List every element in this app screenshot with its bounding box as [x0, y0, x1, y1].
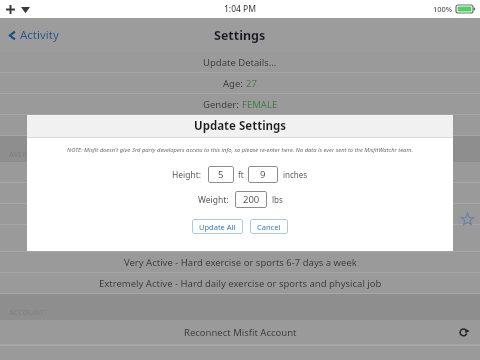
staticText: Cancel [257, 222, 281, 232]
staticText: NOTE: Misfit doesn't give 3rd party deve… [49, 146, 431, 154]
button[interactable]: Cancel [250, 219, 288, 234]
button[interactable] [0, 183, 480, 203]
button[interactable]: 5 [208, 166, 234, 183]
staticText: ft [238, 169, 244, 180]
staticText: Update Details... [203, 56, 277, 69]
button[interactable] [0, 204, 480, 224]
staticText: Very Active - Hard exercise or sports 6-… [124, 256, 357, 269]
staticText: 27 [246, 77, 257, 90]
staticText: 200 [243, 193, 260, 206]
staticText: Extremely Active - Hard daily exercise o… [99, 277, 382, 290]
staticText: FEMALE [242, 98, 278, 111]
button[interactable]: Extremely Active - Hard daily exercise o… [0, 273, 480, 293]
staticText: Settings [214, 27, 266, 44]
staticText: Update Settings [194, 118, 287, 134]
button[interactable]: Gender: [0, 94, 480, 114]
staticText: Activity [20, 27, 59, 43]
button[interactable] [0, 162, 480, 182]
staticText: ACCOUNT [9, 307, 45, 317]
staticText: Update All [199, 222, 236, 232]
button[interactable]: Update Details... [0, 52, 480, 72]
button[interactable]: Age: [0, 73, 480, 93]
button[interactable]: Very Active - Hard exercise or sports 6-… [0, 252, 480, 272]
staticText: Reconnect Misfit Account [184, 326, 297, 339]
staticText: lbs [272, 194, 283, 205]
button[interactable]: Reconnect Misfit Account [0, 320, 480, 344]
staticText: Gender: [203, 98, 242, 111]
staticText: 9 [260, 168, 266, 181]
button[interactable]: Update All [192, 219, 243, 234]
button[interactable] [0, 115, 480, 135]
staticText: inches [283, 169, 308, 180]
other: Favorite [461, 213, 474, 226]
staticText: Height: [172, 169, 202, 181]
button[interactable]: 9 [248, 166, 278, 183]
staticText: Weight: [198, 194, 229, 206]
button[interactable]: Activity [0, 23, 69, 47]
other: Open link [459, 327, 470, 338]
staticText: Age: [223, 77, 246, 90]
staticText: 1:04 PM [224, 3, 257, 15]
staticText: 100% [433, 4, 453, 14]
staticText: AVERAGE [9, 149, 42, 159]
button[interactable]: 200 [235, 191, 267, 208]
staticText: 5 [218, 168, 224, 181]
